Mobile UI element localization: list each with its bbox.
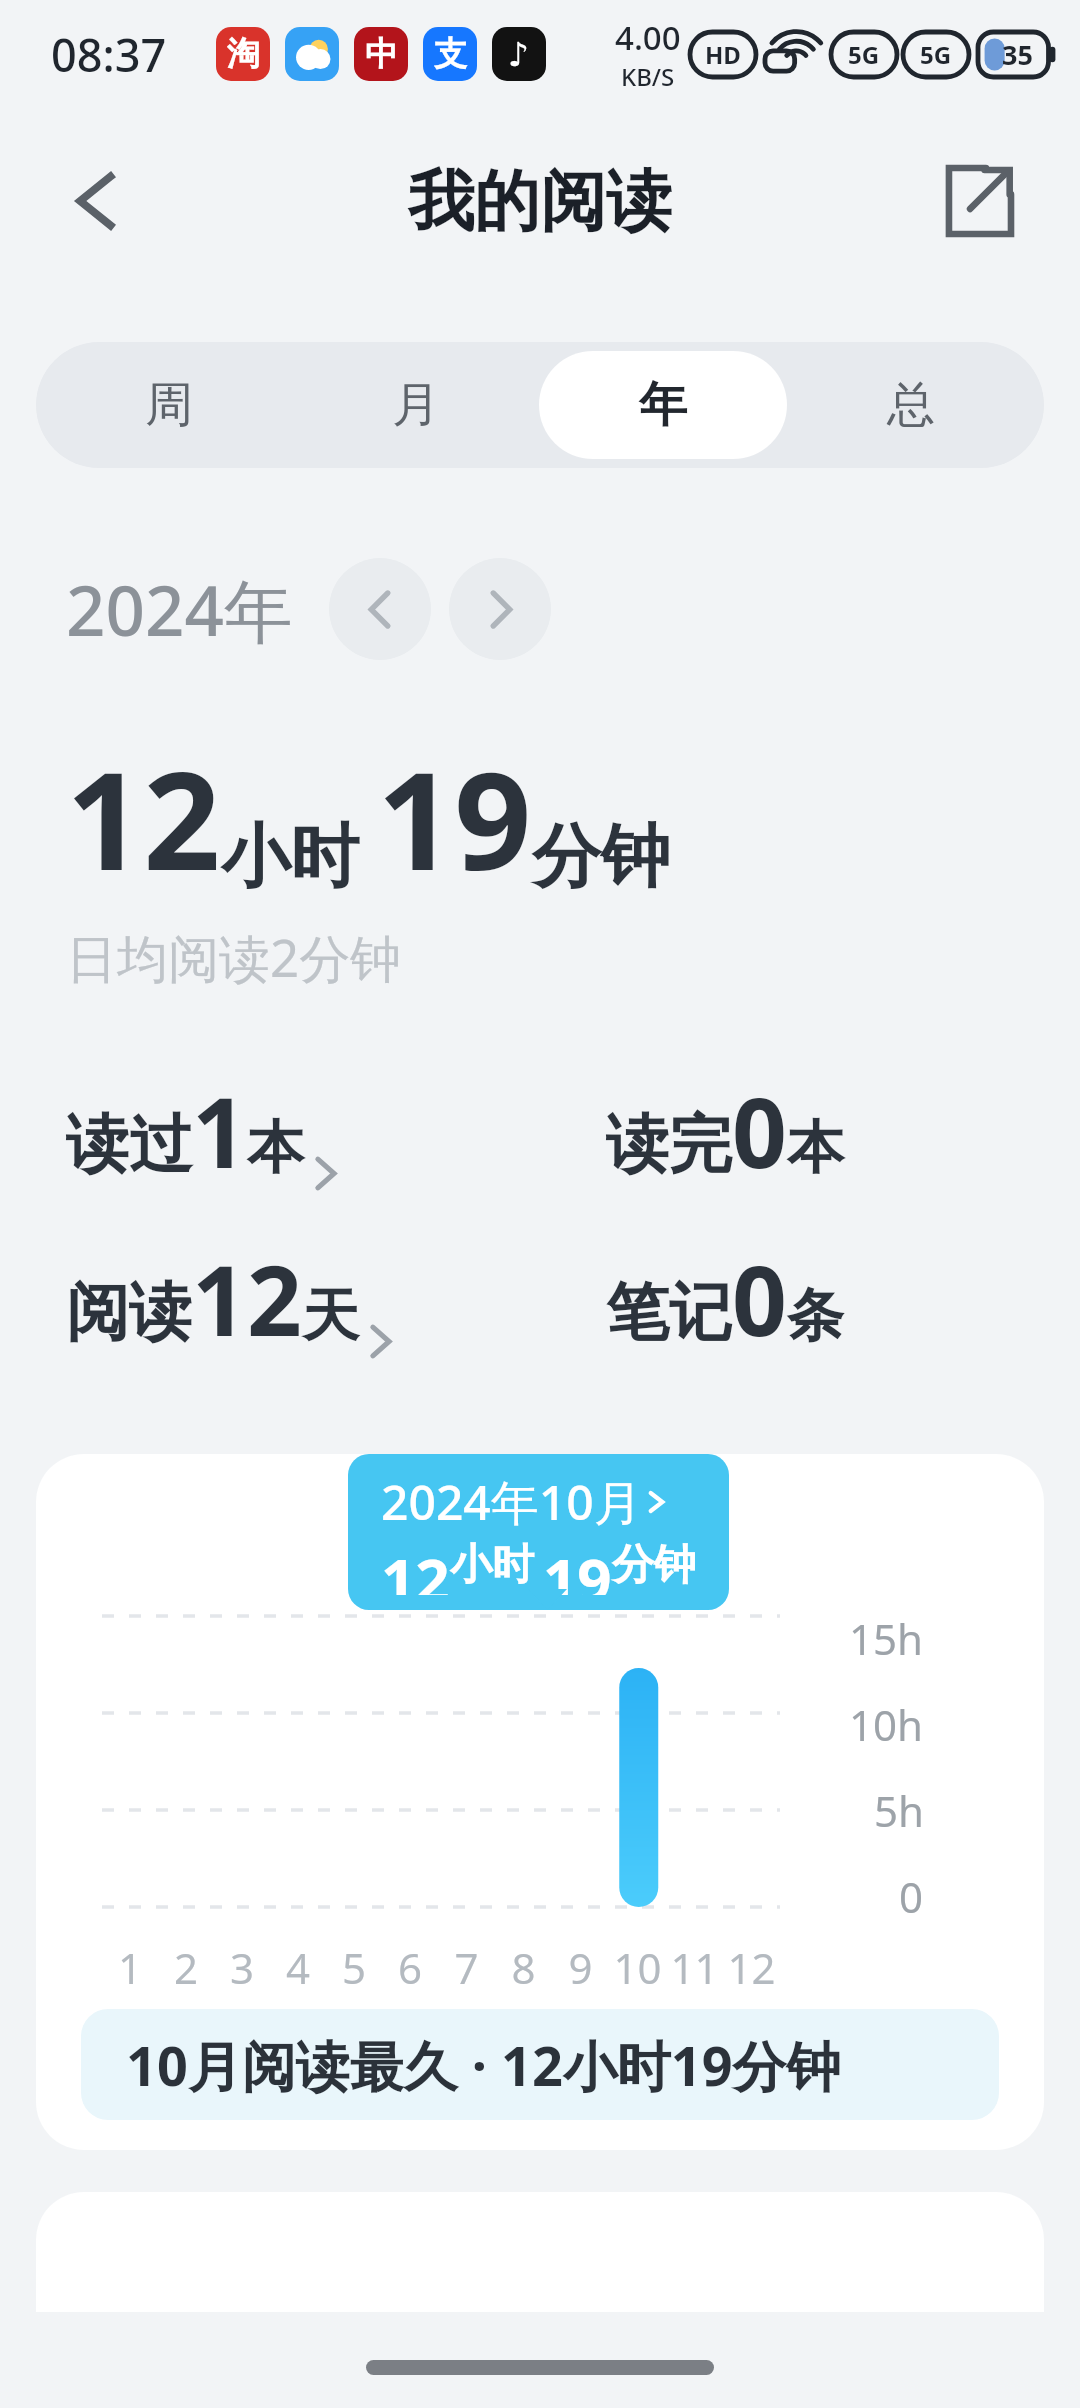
staticText: 日均阅读2分钟 <box>66 922 402 992</box>
staticText: 支 <box>434 33 467 75</box>
button[interactable]: 年 <box>539 351 787 459</box>
staticText: 35 <box>1002 36 1033 73</box>
staticText: 中 <box>365 33 398 75</box>
staticText: 读过 <box>66 1105 192 1184</box>
staticText: 0 <box>899 1868 924 1925</box>
staticText: 阅读 <box>66 1273 192 1352</box>
staticText: 小时 <box>450 1539 534 1592</box>
staticText: 我的阅读 <box>408 160 672 243</box>
staticText: 10 <box>609 1939 666 1996</box>
staticText: 小时 <box>221 814 359 901</box>
staticText: KB/S <box>621 60 675 93</box>
button[interactable]: 10月阅读最久 · 12小时19分钟 <box>81 2009 999 2120</box>
staticText: 总 <box>887 375 935 435</box>
staticText: 淘 <box>227 33 260 75</box>
staticText: 11 <box>666 1939 723 1996</box>
staticText: 19 <box>377 726 532 910</box>
staticText: 条 <box>787 1280 844 1352</box>
staticText: 0 <box>732 1065 787 1196</box>
staticText: 2024年 <box>66 562 293 656</box>
button[interactable]: Share <box>906 129 1050 273</box>
staticText: 5G <box>848 38 880 71</box>
staticText: 12 <box>723 1939 780 1996</box>
staticText: 12 <box>381 1538 450 1595</box>
button[interactable]: Back <box>18 123 174 279</box>
staticText: 3 <box>214 1939 270 1996</box>
staticText: 5G <box>920 38 952 71</box>
staticText: 12 <box>192 1233 302 1364</box>
staticText: 5 <box>326 1939 382 1996</box>
button[interactable]: 读过 <box>66 1058 340 1196</box>
staticText: 12 <box>66 726 221 910</box>
staticText: 19 <box>543 1538 612 1595</box>
staticText: 08:37 <box>51 24 167 85</box>
staticText: 1 <box>192 1065 247 1196</box>
staticText: 6 <box>382 1939 438 1996</box>
button[interactable]: 周 <box>45 351 292 459</box>
staticText: 10月阅读最久 · 12小时19分钟 <box>126 2028 841 2102</box>
staticText: 本 <box>247 1112 304 1184</box>
staticText: 分钟 <box>532 814 670 901</box>
staticText: 2024年10月 <box>381 1469 642 1535</box>
button[interactable]: 总 <box>787 351 1035 459</box>
button[interactable]: Previous year <box>329 558 431 660</box>
staticText: 1 <box>102 1939 158 1996</box>
staticText: 月 <box>392 375 440 435</box>
button[interactable]: 阅读 <box>66 1226 395 1364</box>
button[interactable]: Next year <box>449 558 551 660</box>
staticText: 0 <box>732 1233 787 1364</box>
staticText: 15h <box>849 1610 924 1667</box>
staticText: 7 <box>438 1939 495 1996</box>
staticText: 5h <box>874 1782 924 1839</box>
button[interactable]: 2024年10月 <box>348 1454 729 1610</box>
staticText: 分钟 <box>612 1539 696 1592</box>
staticText: 读完 <box>606 1105 732 1184</box>
staticText: 天 <box>302 1280 359 1352</box>
staticText: 9 <box>552 1939 609 1996</box>
staticText: 10h <box>849 1696 924 1753</box>
staticText: 年 <box>639 375 687 435</box>
staticText: HD <box>705 38 741 71</box>
staticText: 2 <box>158 1939 214 1996</box>
staticText: 8 <box>495 1939 552 1996</box>
staticText: 周 <box>145 375 193 435</box>
staticText: ♪ <box>508 35 530 73</box>
staticText: 本 <box>787 1112 844 1184</box>
button[interactable]: 月 <box>292 351 539 459</box>
staticText: 4.00 <box>615 15 681 60</box>
staticText: 笔记 <box>606 1273 732 1352</box>
staticText: 4 <box>270 1939 326 1996</box>
